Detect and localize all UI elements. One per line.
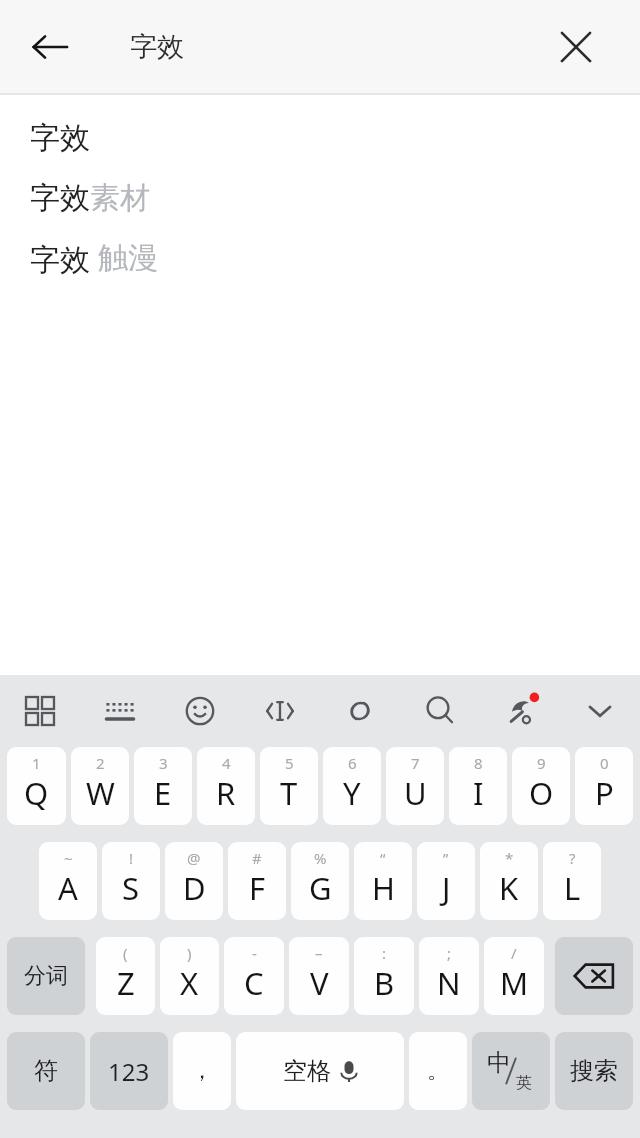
button[interactable]: 7 [386,747,444,825]
button[interactable]: Text cursor [240,675,320,747]
button[interactable]: 6 [323,747,381,825]
button[interactable]: 4 [197,747,255,825]
button[interactable]: / [484,937,544,1015]
button[interactable]: ? [543,842,601,920]
staticText: 123 [108,1055,150,1088]
staticText: ” [443,848,449,868]
staticText: 符 [34,1056,58,1086]
button[interactable]: ; [419,937,479,1015]
staticText: 6 [348,753,357,773]
button[interactable]: ， [173,1032,231,1110]
staticText: W [86,772,115,814]
staticText: E [154,772,172,814]
staticText: 9 [537,753,546,773]
staticText: : [382,943,387,963]
staticText: H [372,867,395,909]
button[interactable]: 分词 [7,937,85,1015]
button[interactable]: 符 [7,1032,85,1110]
button[interactable]: “ [354,842,412,920]
button[interactable]: ( [96,937,155,1015]
button[interactable]: * [480,842,538,920]
button[interactable]: 8 [449,747,507,825]
staticText: C [244,962,264,1004]
staticText: 字效 [30,119,90,157]
staticText: I [473,772,484,814]
staticText: N [437,962,461,1004]
staticText: 7 [411,753,420,773]
button[interactable]: 中 [472,1032,550,1110]
button[interactable]: 3 [134,747,192,825]
button[interactable]: 字效 [0,108,640,168]
staticText: 中 [487,1048,511,1078]
staticText: Z [117,962,135,1004]
button[interactable]: Backspace [555,937,633,1015]
staticText: Q [24,772,49,814]
staticText: ~ [64,848,73,868]
button[interactable]: ) [160,937,219,1015]
button[interactable]: 字效 [0,228,640,288]
staticText: 4 [222,753,231,773]
staticText: ? [569,848,576,868]
button[interactable]: 5 [260,747,318,825]
button[interactable]: Collapse [560,675,640,747]
staticText: 2 [96,753,105,773]
button[interactable]: Theme [480,675,560,747]
button[interactable]: Clipboard [320,675,400,747]
staticText: A [58,867,78,909]
staticText: ) [187,943,192,963]
staticText: ( [123,943,128,963]
button[interactable]: 0 [575,747,633,825]
staticText: 字效 [130,30,184,64]
button[interactable]: # [228,842,286,920]
staticText: “ [380,848,386,868]
staticText: 0 [600,753,609,773]
button[interactable]: Emoji [160,675,240,747]
staticText: O [529,772,554,814]
staticText: J [442,867,451,909]
button[interactable]: ~ [39,842,97,920]
staticText: Y [343,772,361,814]
button[interactable]: Close [544,15,608,79]
button[interactable]: @ [165,842,223,920]
staticText: * [505,848,514,868]
button[interactable]: – [289,937,349,1015]
button[interactable]: 1 [7,747,66,825]
staticText: 。 [427,1057,449,1085]
button[interactable]: 空格 [236,1032,404,1110]
button[interactable]: % [291,842,349,920]
button[interactable]: ! [102,842,160,920]
staticText: 字效 [30,179,90,217]
staticText: X [180,962,199,1004]
staticText: K [499,867,519,909]
staticText: G [309,867,332,909]
staticText: / [511,943,517,963]
staticText: 素材 [90,179,150,217]
staticText: 3 [159,753,168,773]
staticText: 英 [516,1073,532,1093]
staticText: R [216,772,236,814]
button[interactable]: Keyboard layout [80,675,160,747]
button[interactable]: ” [417,842,475,920]
button[interactable]: 字效 [0,168,640,228]
button[interactable]: Back [14,11,86,83]
button[interactable]: 123 [90,1032,168,1110]
button[interactable]: Apps [0,675,80,747]
staticText: V [310,962,329,1004]
staticText: @ [187,848,201,868]
button[interactable]: 搜索 [555,1032,633,1110]
button[interactable]: : [354,937,414,1015]
staticText: ， [191,1057,213,1085]
button[interactable]: 。 [409,1032,467,1110]
staticText: 5 [285,753,294,773]
staticText: 分词 [24,962,68,990]
staticText: 搜索 [570,1056,618,1086]
staticText: # [252,848,262,868]
button[interactable]: 9 [512,747,570,825]
staticText: B [374,962,395,1004]
button[interactable]: 2 [71,747,129,825]
staticText: U [404,772,427,814]
button[interactable]: Search [400,675,480,747]
staticText: M [500,962,529,1004]
button[interactable]: - [224,937,284,1015]
staticText: L [564,867,581,909]
